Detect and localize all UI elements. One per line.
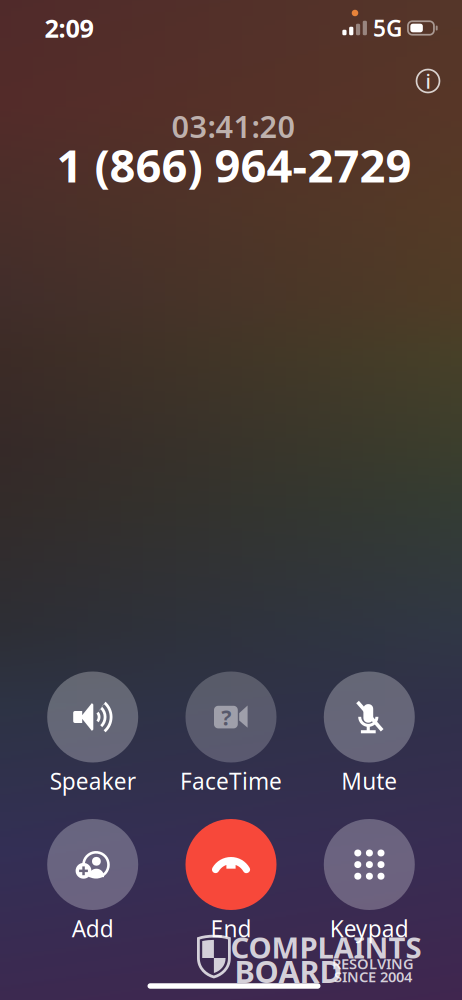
button[interactable]: ? [185,671,276,800]
staticText: End [210,913,251,943]
staticText: 5G [373,13,402,43]
staticText: ? [221,703,231,731]
staticText: 1 (866) 964-2729 [56,135,411,195]
staticText: 03:41:20 [171,106,295,146]
button[interactable]: Add [47,819,138,948]
staticText: i [425,68,430,94]
staticText: Add [72,913,114,943]
button[interactable]: End [185,819,276,948]
button[interactable]: Mute [324,671,415,800]
staticText: Keypad [330,913,409,943]
staticText: COMPLAINTS [230,927,421,966]
staticText: RESOLVING [332,954,414,973]
button[interactable]: Speaker [47,671,138,800]
staticText: SINCE 2004 [334,967,412,986]
staticText: BOARD [234,951,341,991]
staticText: Speaker [50,766,136,796]
button[interactable]: Call details [411,64,445,98]
staticText: 2:09 [44,11,93,45]
button[interactable]: Keypad [324,819,415,948]
staticText: Mute [341,766,397,796]
staticText: FaceTime [180,766,282,796]
